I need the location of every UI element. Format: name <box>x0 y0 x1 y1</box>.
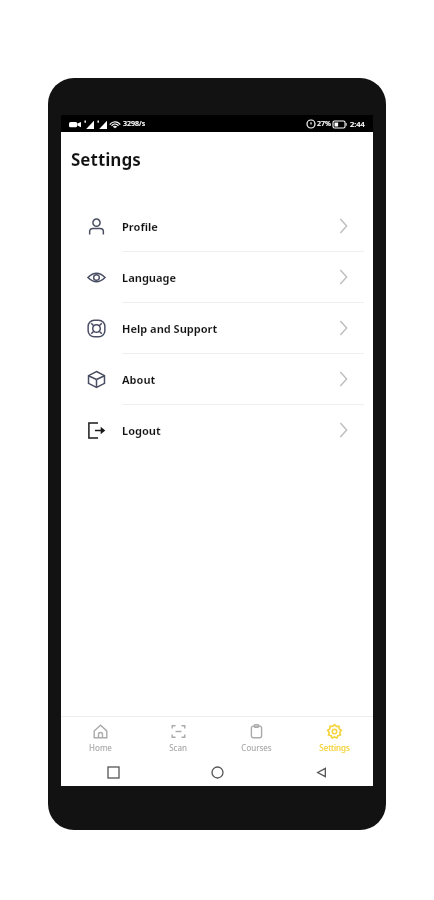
staticText: Courses <box>241 742 272 753</box>
button[interactable]: Home <box>61 717 139 759</box>
button[interactable]: Help and Support <box>70 303 364 353</box>
button[interactable]: Scan <box>139 717 217 759</box>
staticText: Settings <box>71 148 141 171</box>
button[interactable]: Home <box>165 759 269 786</box>
staticText: 2:44 <box>350 119 365 129</box>
button[interactable]: Language <box>70 252 364 302</box>
button[interactable]: Recent apps <box>61 759 165 786</box>
staticText: Scan <box>169 742 187 753</box>
staticText: Help and Support <box>122 321 218 336</box>
button[interactable]: Logout <box>70 405 364 455</box>
staticText: Logout <box>122 423 161 438</box>
staticText: 3298/s <box>123 119 146 129</box>
button[interactable]: Back <box>269 759 373 786</box>
staticText: Settings <box>319 742 350 753</box>
staticText: About <box>122 372 156 387</box>
button[interactable]: About <box>70 354 364 404</box>
button[interactable]: Settings <box>295 717 373 759</box>
button[interactable]: Profile <box>70 201 364 251</box>
staticText: 27% <box>317 119 331 129</box>
staticText: Language <box>122 270 177 285</box>
button[interactable]: Courses <box>217 717 295 759</box>
staticText: Profile <box>122 219 158 234</box>
staticText: Home <box>89 742 112 753</box>
